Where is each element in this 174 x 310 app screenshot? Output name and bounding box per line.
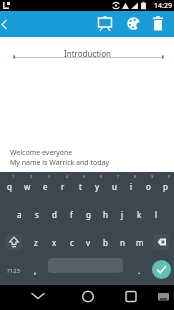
staticText: , (34, 265, 37, 276)
button[interactable]: v (80, 228, 97, 256)
button[interactable]: z (27, 228, 45, 256)
staticText: e (43, 181, 48, 192)
staticText: n (120, 237, 125, 248)
staticText: o (146, 181, 151, 192)
staticText: t (79, 181, 82, 192)
button[interactable] (147, 11, 171, 37)
button[interactable] (111, 285, 151, 310)
button[interactable] (0, 228, 27, 256)
staticText: My name is Warrick and today (10, 158, 110, 168)
staticText: 8 (134, 174, 137, 179)
button[interactable]: , (27, 256, 44, 285)
button[interactable]: b (97, 228, 114, 256)
staticText: k (137, 209, 142, 220)
button[interactable]: ?123 (0, 256, 27, 285)
staticText: Welcome everyone (10, 148, 73, 158)
staticText: 1 (12, 174, 15, 179)
button[interactable]: u (106, 172, 123, 200)
staticText: 5 (83, 174, 86, 179)
button[interactable]: y (89, 172, 106, 200)
button[interactable]: k (131, 200, 148, 228)
staticText: g (86, 209, 91, 220)
staticText: x (52, 237, 57, 248)
button[interactable] (148, 256, 174, 285)
button[interactable]: m (131, 228, 148, 256)
staticText: q (7, 181, 12, 192)
button[interactable]: Introduction (0, 42, 174, 64)
button[interactable]: j (114, 200, 131, 228)
button[interactable]: s (28, 200, 46, 228)
staticText: 4 (66, 174, 69, 179)
staticText: 6 (100, 174, 103, 179)
staticText: u (112, 181, 117, 192)
staticText: . (138, 265, 141, 276)
button[interactable]: e (36, 172, 54, 200)
staticText: c (70, 237, 74, 248)
staticText: Introduction (64, 48, 111, 59)
staticText: a (17, 209, 22, 220)
button[interactable]: o (140, 172, 157, 200)
staticText: 3 (48, 174, 51, 179)
staticText: j (121, 209, 124, 220)
staticText: m (136, 237, 144, 248)
button[interactable]: . (131, 256, 148, 285)
button[interactable]: a (10, 200, 28, 228)
button[interactable]: p (157, 172, 174, 200)
button[interactable]: t (72, 172, 89, 200)
button[interactable]: f (63, 200, 80, 228)
staticText: 14:29 (154, 1, 172, 11)
staticText: y (95, 181, 100, 192)
staticText: 9 (151, 174, 154, 179)
button[interactable] (0, 11, 16, 37)
staticText: f (70, 209, 73, 220)
button[interactable]: g (80, 200, 97, 228)
button[interactable] (148, 228, 174, 256)
staticText: s (35, 209, 39, 220)
button[interactable]: x (45, 228, 63, 256)
staticText: h (103, 209, 108, 220)
button[interactable]: q (0, 172, 18, 200)
button[interactable]: w (18, 172, 36, 200)
button[interactable]: h (97, 200, 114, 228)
staticText: b (103, 237, 108, 248)
staticText: d (52, 209, 57, 220)
button[interactable] (68, 285, 108, 310)
staticText: p (163, 181, 168, 192)
staticText: v (86, 237, 91, 248)
button[interactable]: l (148, 200, 165, 228)
button[interactable]: r (54, 172, 72, 200)
staticText: ?123 (7, 267, 20, 275)
button[interactable]: i (123, 172, 140, 200)
staticText: 0 (168, 174, 171, 179)
staticText: z (34, 237, 38, 248)
staticText: i (130, 181, 133, 192)
button[interactable] (120, 11, 147, 37)
button[interactable] (18, 285, 58, 310)
button[interactable]: n (114, 228, 131, 256)
staticText: 7 (117, 174, 120, 179)
button[interactable]: c (63, 228, 80, 256)
staticText: w (24, 181, 31, 192)
button[interactable]: d (46, 200, 63, 228)
staticText: l (155, 209, 158, 220)
button[interactable] (94, 11, 120, 37)
staticText: 2 (30, 174, 33, 179)
staticText: r (61, 181, 65, 192)
